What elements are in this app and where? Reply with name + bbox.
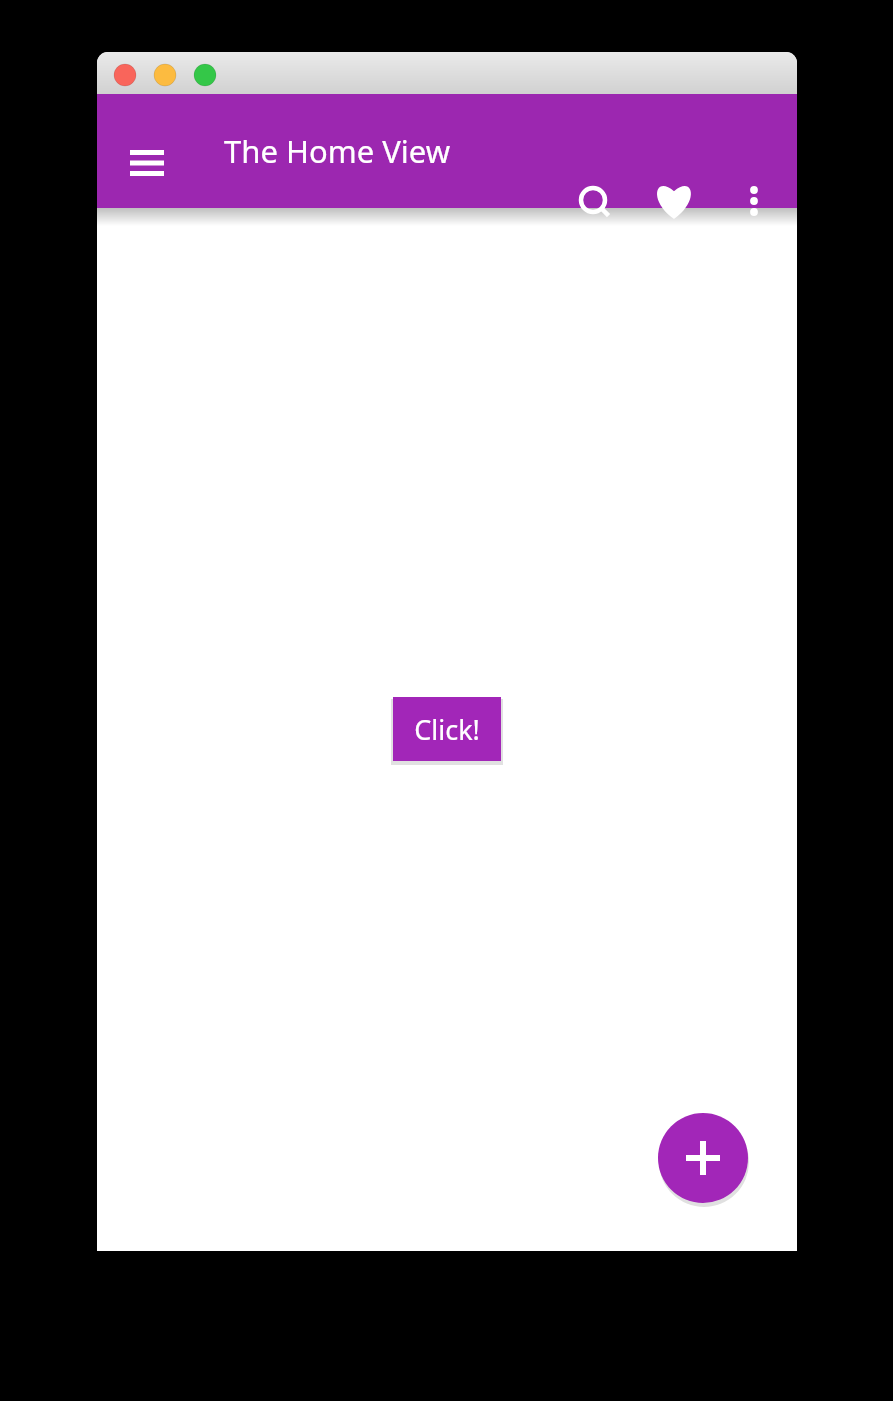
button[interactable]: More options (730, 177, 778, 225)
button[interactable]: Add (658, 1113, 748, 1203)
button[interactable]: Click! (393, 697, 501, 761)
button[interactable]: Search (568, 176, 620, 228)
staticText: The Home View (224, 130, 451, 172)
button[interactable]: Open navigation menu (118, 135, 174, 191)
staticText: Click! (414, 711, 480, 748)
button[interactable]: Favorite (648, 174, 700, 226)
